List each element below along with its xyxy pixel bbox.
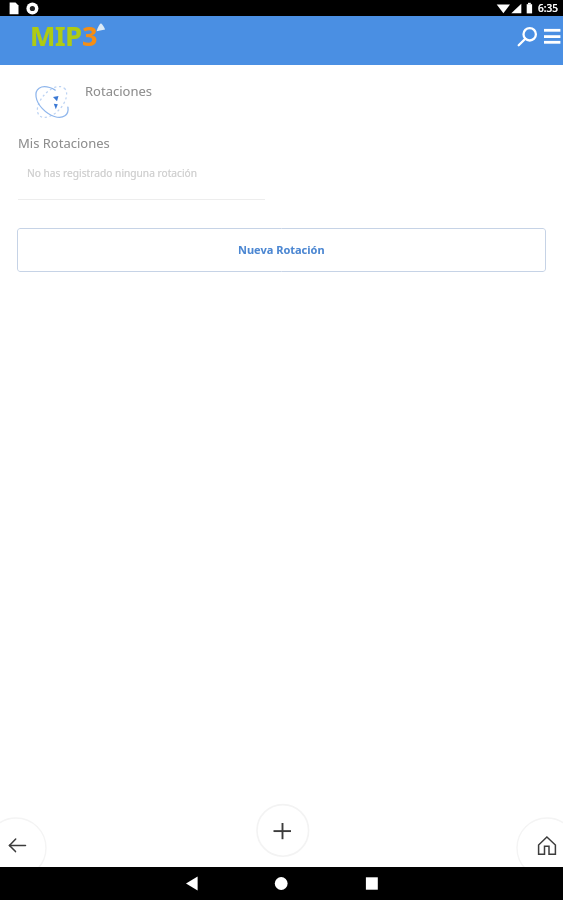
button[interactable]: Add new rotation xyxy=(257,805,308,856)
staticText: Rotaciones xyxy=(85,82,152,100)
staticText: 3 xyxy=(82,17,98,54)
button[interactable]: Home xyxy=(517,818,563,878)
button[interactable]: Nueva Rotación xyxy=(17,228,546,272)
staticText: No has registrado ninguna rotación xyxy=(27,166,198,180)
staticText: Nueva Rotación xyxy=(238,242,325,257)
staticText: 6:35 xyxy=(538,1,558,15)
button[interactable]: Rotaciones xyxy=(0,65,563,120)
button[interactable]: Menu xyxy=(536,24,563,57)
button[interactable]: Search xyxy=(513,24,547,58)
button[interactable]: Back xyxy=(0,818,46,878)
staticText: Mis Rotaciones xyxy=(18,134,110,152)
staticText: MIP xyxy=(30,17,82,54)
